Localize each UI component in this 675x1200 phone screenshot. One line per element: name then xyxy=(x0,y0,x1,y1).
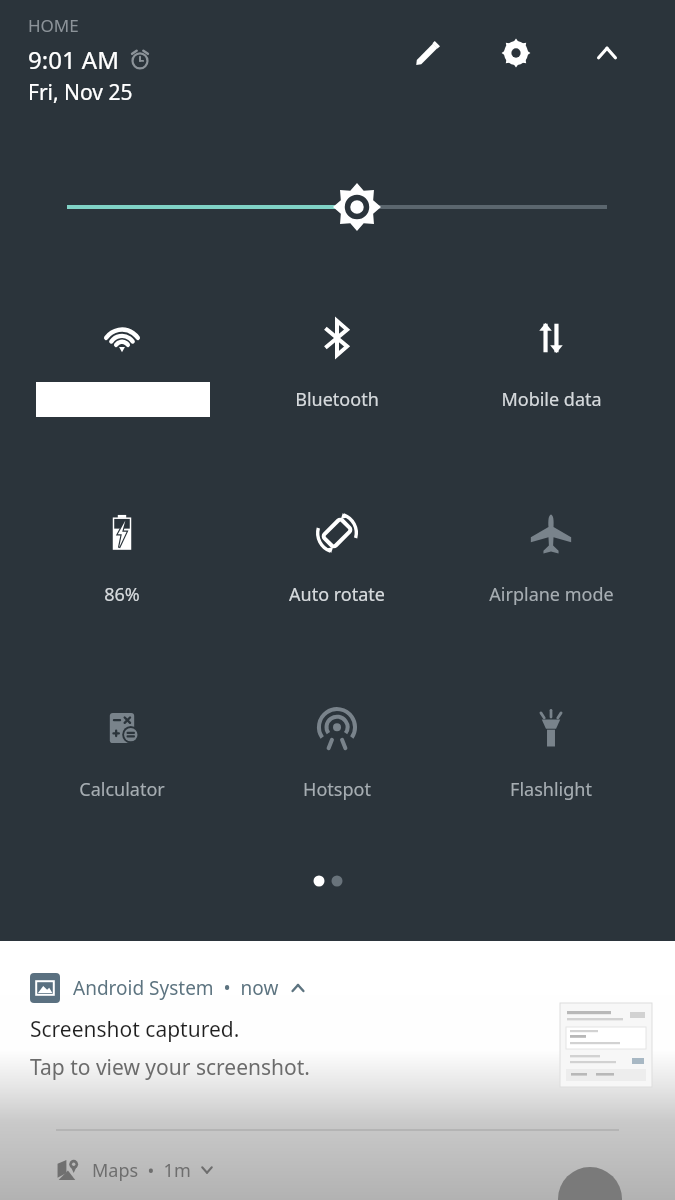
staticText: Maps • 1m xyxy=(92,1158,191,1183)
button[interactable]: Hotspot xyxy=(237,686,437,836)
button[interactable]: Calculator xyxy=(22,686,222,836)
staticText: Hotspot xyxy=(303,777,371,802)
staticText: Bluetooth xyxy=(295,387,379,412)
button[interactable]: Wi-Fi xyxy=(22,296,222,446)
button[interactable]: Maps • 1m xyxy=(56,1109,619,1200)
button[interactable]: Settings xyxy=(489,26,543,80)
button[interactable]: Auto rotate xyxy=(237,491,437,641)
staticText: 9:01 AM xyxy=(28,43,119,76)
staticText: Screenshot captured. xyxy=(30,1015,240,1044)
staticText: Mobile data xyxy=(501,387,602,412)
button[interactable]: Edit xyxy=(401,26,455,80)
button[interactable]: Flashlight xyxy=(451,686,651,836)
staticText: Auto rotate xyxy=(289,582,385,607)
staticText: Tap to view your screenshot. xyxy=(30,1053,310,1082)
staticText: HOME xyxy=(28,14,79,37)
staticText: Airplane mode xyxy=(489,582,614,607)
button[interactable]: Collapse xyxy=(580,26,634,80)
button[interactable]: Android System • now xyxy=(0,941,675,1091)
staticText: Calculator xyxy=(79,777,165,802)
button[interactable]: Bluetooth xyxy=(237,296,437,446)
staticText: Fri, Nov 25 xyxy=(28,78,133,107)
staticText: Android System • now xyxy=(73,975,279,1001)
staticText: 86% xyxy=(104,582,140,607)
button[interactable]: Battery 86 percent xyxy=(22,491,222,641)
button[interactable]: Brightness xyxy=(0,172,675,242)
staticText: Flashlight xyxy=(510,777,592,802)
button[interactable]: Airplane mode xyxy=(451,491,651,641)
button[interactable]: Mobile data xyxy=(451,296,651,446)
